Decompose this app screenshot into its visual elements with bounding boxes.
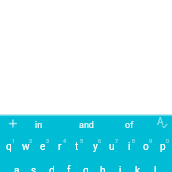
button[interactable]: A <box>149 112 171 132</box>
button[interactable]: k <box>127 161 149 172</box>
staticText: w <box>22 141 30 153</box>
staticText: 3 <box>46 138 50 144</box>
staticText: 9 <box>149 138 153 144</box>
staticText: q <box>6 141 12 153</box>
button[interactable]: 1 <box>3 131 25 151</box>
staticText: 7 <box>115 138 119 144</box>
staticText: f <box>67 165 71 172</box>
staticText: h <box>100 165 106 172</box>
staticText: and <box>79 120 94 131</box>
button[interactable]: u <box>101 137 123 157</box>
staticText: of <box>125 120 134 131</box>
staticText: l <box>154 165 157 172</box>
staticText: d <box>49 165 55 172</box>
staticText: e <box>40 141 46 153</box>
button[interactable] <box>6 117 20 131</box>
staticText: 4 <box>63 138 67 144</box>
button[interactable]: r <box>49 137 71 157</box>
button[interactable]: 7 <box>106 131 128 151</box>
button[interactable]: t <box>66 137 88 157</box>
button[interactable]: p <box>152 137 172 157</box>
staticText: t <box>75 141 79 153</box>
button[interactable]: of <box>118 115 140 135</box>
staticText: in <box>35 120 43 131</box>
button[interactable]: f <box>58 161 80 172</box>
button[interactable]: in <box>28 115 50 135</box>
button[interactable]: 0 <box>157 131 172 151</box>
button[interactable]: 2 <box>20 131 42 151</box>
button[interactable]: 4 <box>54 131 76 151</box>
staticText: k <box>135 165 141 172</box>
button[interactable]: j <box>109 161 131 172</box>
button[interactable]: e <box>32 137 54 157</box>
staticText: r <box>58 141 62 153</box>
staticText: 1 <box>12 138 16 144</box>
button[interactable]: h <box>92 161 114 172</box>
staticText: a <box>14 165 20 172</box>
button[interactable]: d <box>41 161 63 172</box>
staticText: p <box>160 141 166 153</box>
staticText: u <box>109 141 115 153</box>
button[interactable]: y <box>84 137 106 157</box>
button[interactable]: q <box>0 137 20 157</box>
staticText: j <box>119 165 122 172</box>
button[interactable]: 8 <box>123 131 145 151</box>
staticText: 2 <box>29 138 33 144</box>
button[interactable]: 3 <box>37 131 59 151</box>
staticText: g <box>83 165 89 172</box>
button[interactable]: s <box>23 161 45 172</box>
button[interactable]: a <box>6 161 28 172</box>
button[interactable]: g <box>75 161 97 172</box>
staticText: i <box>128 141 131 153</box>
button[interactable]: 9 <box>140 131 162 151</box>
button[interactable]: l <box>144 161 166 172</box>
staticText: 5 <box>80 138 84 144</box>
staticText: A <box>157 116 164 128</box>
button[interactable]: i <box>118 137 140 157</box>
staticText: o <box>143 141 149 153</box>
button[interactable]: 6 <box>89 131 111 151</box>
button[interactable]: and <box>75 115 97 135</box>
staticText: 8 <box>132 138 136 144</box>
button[interactable] <box>161 122 171 132</box>
staticText: 0 <box>166 138 170 144</box>
button[interactable]: w <box>15 137 37 157</box>
button[interactable]: o <box>135 137 157 157</box>
staticText: 6 <box>98 138 102 144</box>
staticText: s <box>31 165 37 172</box>
staticText: y <box>93 141 98 153</box>
button[interactable]: 5 <box>71 131 93 151</box>
